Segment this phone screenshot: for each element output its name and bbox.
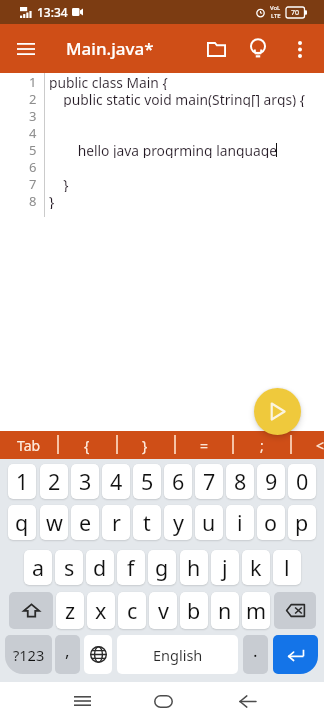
- button[interactable]: u: [195, 505, 223, 540]
- staticText: u: [202, 508, 216, 537]
- button[interactable]: Back: [227, 682, 267, 720]
- staticText: k: [250, 553, 262, 582]
- staticText: 8: [234, 467, 247, 496]
- staticText: t: [143, 508, 151, 537]
- button[interactable]: 1: [8, 464, 36, 499]
- staticText: w: [46, 508, 63, 537]
- staticText: b: [187, 596, 201, 625]
- button[interactable]: Enter: [273, 635, 318, 674]
- button[interactable]: Navigation menu: [8, 31, 44, 67]
- button[interactable]: 2: [40, 464, 68, 499]
- staticText: p: [295, 508, 309, 537]
- button[interactable]: Open file: [197, 30, 235, 68]
- staticText: 5: [141, 467, 154, 496]
- staticText: n: [218, 596, 232, 625]
- button[interactable]: ?123: [5, 635, 52, 674]
- button[interactable]: i: [226, 505, 254, 540]
- button[interactable]: =: [175, 431, 233, 459]
- staticText: hello java progrming language: [49, 141, 278, 158]
- staticText: Tab: [17, 436, 41, 455]
- button[interactable]: 8: [226, 464, 254, 499]
- staticText: =: [200, 436, 209, 455]
- button[interactable]: t: [133, 505, 161, 540]
- button[interactable]: z: [56, 592, 84, 629]
- button[interactable]: Backspace: [274, 592, 316, 629]
- button[interactable]: .: [243, 635, 268, 674]
- button[interactable]: Tips: [239, 30, 277, 68]
- staticText: <: [316, 436, 324, 455]
- staticText: Main.java*: [66, 37, 154, 60]
- button[interactable]: 4: [102, 464, 130, 499]
- button[interactable]: g: [148, 550, 176, 585]
- button[interactable]: n: [211, 592, 239, 629]
- button[interactable]: Shift: [9, 592, 53, 629]
- button[interactable]: m: [242, 592, 270, 629]
- button[interactable]: q: [8, 505, 36, 540]
- button[interactable]: r: [102, 505, 130, 540]
- staticText: .: [253, 639, 258, 662]
- staticText: j: [222, 553, 228, 582]
- staticText: }: [142, 436, 148, 455]
- staticText: e: [79, 508, 92, 537]
- button[interactable]: }: [116, 431, 174, 459]
- button[interactable]: e: [71, 505, 99, 540]
- button[interactable]: English: [117, 635, 238, 674]
- staticText: f: [127, 553, 135, 582]
- button[interactable]: ,: [55, 635, 80, 674]
- button[interactable]: a: [24, 550, 52, 585]
- staticText: 7: [29, 175, 37, 192]
- staticText: 4: [110, 467, 123, 496]
- button[interactable]: ;: [233, 431, 291, 459]
- staticText: v: [158, 596, 169, 625]
- button[interactable]: 0: [288, 464, 316, 499]
- button[interactable]: Tab: [0, 431, 58, 459]
- staticText: 9: [265, 467, 278, 496]
- staticText: 3: [29, 107, 37, 124]
- button[interactable]: 6: [164, 464, 192, 499]
- button[interactable]: Recent apps: [62, 682, 102, 720]
- button[interactable]: 3: [71, 464, 99, 499]
- button[interactable]: 7: [195, 464, 223, 499]
- button[interactable]: l: [273, 550, 301, 585]
- staticText: 6: [29, 158, 37, 175]
- button[interactable]: y: [164, 505, 192, 540]
- button[interactable]: o: [257, 505, 285, 540]
- button[interactable]: 5: [133, 464, 161, 499]
- button[interactable]: Home: [143, 682, 183, 720]
- staticText: 4: [29, 124, 37, 141]
- staticText: d: [93, 553, 107, 582]
- button[interactable]: More options: [281, 30, 319, 68]
- button[interactable]: w: [40, 505, 68, 540]
- button[interactable]: 9: [257, 464, 285, 499]
- staticText: public class Main {: [49, 73, 168, 90]
- staticText: LTE: [271, 12, 281, 20]
- button[interactable]: <: [291, 431, 324, 459]
- button[interactable]: Run: [254, 388, 301, 435]
- button[interactable]: d: [86, 550, 114, 585]
- button[interactable]: x: [87, 592, 115, 629]
- staticText: q: [15, 508, 29, 537]
- staticText: {: [84, 436, 90, 455]
- button[interactable]: s: [55, 550, 83, 585]
- button[interactable]: f: [117, 550, 145, 585]
- staticText: English: [153, 645, 203, 665]
- staticText: 2: [29, 90, 37, 107]
- button[interactable]: v: [149, 592, 177, 629]
- staticText: 6: [172, 467, 185, 496]
- button[interactable]: c: [118, 592, 146, 629]
- button[interactable]: Change keyboard language: [84, 635, 112, 674]
- staticText: 0: [296, 467, 309, 496]
- staticText: a: [32, 553, 45, 582]
- button[interactable]: k: [242, 550, 270, 585]
- staticText: ?123: [13, 645, 45, 665]
- button[interactable]: b: [180, 592, 208, 629]
- staticText: 13:34: [37, 4, 68, 20]
- button[interactable]: p: [288, 505, 316, 540]
- button[interactable]: j: [211, 550, 239, 585]
- staticText: y: [173, 508, 184, 537]
- button[interactable]: h: [180, 550, 208, 585]
- staticText: 5: [29, 141, 37, 158]
- button[interactable]: {: [58, 431, 116, 459]
- staticText: z: [65, 596, 76, 625]
- staticText: i: [237, 508, 243, 537]
